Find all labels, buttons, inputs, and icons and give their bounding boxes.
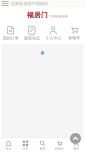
button[interactable]: 购物车 [64,23,85,44]
staticText: 我的订单 [3,36,19,41]
button[interactable]: 我的订单 [0,23,21,44]
staticText: 搜索 [39,147,45,150]
staticText: ·中国高端品牌 [49,14,68,18]
staticText: 福居门 [27,11,48,19]
button[interactable]: 分类 [17,138,34,153]
staticText: 首页 [5,147,11,150]
staticText: 我的 [73,147,79,150]
button[interactable]: 个人中心 [42,23,64,44]
staticText: 分类 [22,147,28,150]
button[interactable]: 首页 [0,138,17,153]
button[interactable]: 购物车 [51,138,68,153]
staticText: 个人中心 [45,36,61,41]
staticText: 毛家园·最贵中国新的 [11,1,48,6]
staticText: 最新动态 [24,36,40,41]
button[interactable]: Menu [1,0,9,7]
staticText: 购物车 [68,35,80,40]
button[interactable]: Back to top [70,133,81,144]
button[interactable]: 最新动态 [21,23,42,44]
staticText: 购物车 [55,147,64,150]
button[interactable]: 搜索 [34,138,51,153]
button[interactable]: 我的 [68,138,85,153]
